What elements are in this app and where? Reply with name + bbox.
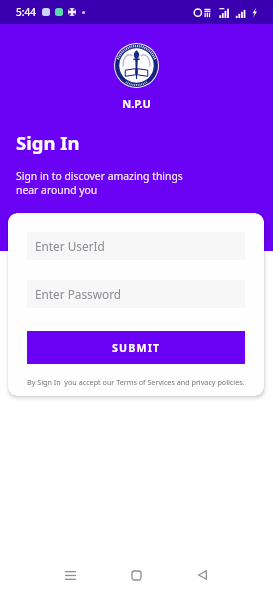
- staticText: 5:44: [16, 5, 36, 19]
- staticText: Enter UserId: [35, 238, 105, 254]
- staticText: Enter Password: [35, 286, 122, 302]
- button[interactable]: Back: [187, 560, 217, 590]
- staticText: N.P.U: [122, 96, 151, 111]
- button[interactable]: Enter Password: [27, 280, 245, 308]
- button[interactable]: Home: [121, 560, 151, 590]
- button[interactable]: Enter UserId: [27, 232, 245, 260]
- button[interactable]: Recents: [55, 560, 85, 590]
- staticText: Sign In: [16, 130, 80, 155]
- staticText: Sign in to discover amazing things near …: [16, 169, 183, 197]
- button[interactable]: SUBMIT: [27, 331, 245, 364]
- staticText: SUBMIT: [112, 341, 161, 355]
- staticText: By Sign In you accept our Terms of Servi…: [27, 377, 245, 387]
